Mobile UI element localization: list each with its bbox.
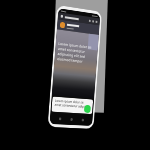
staticText: Lorem ipsum dolor sit amet consectetur a… xyxy=(57,41,95,65)
staticText: Lorem ipsum dolor sit amet consectetur a… xyxy=(54,99,85,109)
